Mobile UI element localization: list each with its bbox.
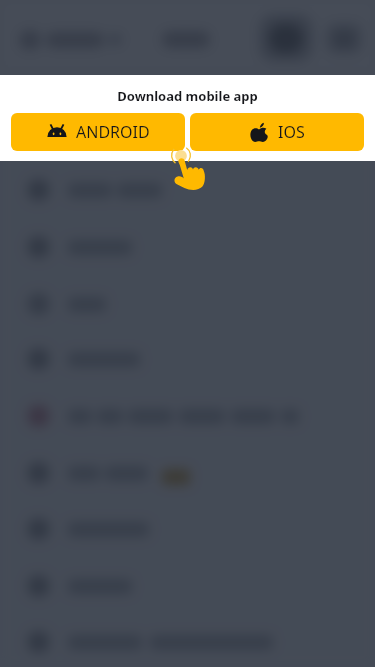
staticText: ANDROID bbox=[76, 121, 150, 143]
button[interactable]: ANDROID bbox=[11, 113, 185, 151]
staticText: Download mobile app bbox=[0, 87, 375, 105]
button[interactable]: IOS bbox=[190, 113, 364, 151]
staticText: IOS bbox=[278, 121, 305, 143]
